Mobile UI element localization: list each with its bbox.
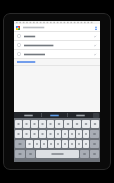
button[interactable] <box>39 130 46 138</box>
button[interactable] <box>31 120 38 128</box>
button[interactable]: Emoji <box>26 150 35 158</box>
button[interactable] <box>14 59 100 65</box>
button[interactable] <box>68 114 93 117</box>
button[interactable] <box>31 130 38 138</box>
button[interactable] <box>23 120 30 128</box>
other: Insert suggestion <box>94 35 97 38</box>
button[interactable] <box>15 130 22 138</box>
button[interactable] <box>42 114 67 117</box>
button[interactable] <box>15 120 22 128</box>
button[interactable]: Insert suggestion <box>14 41 100 49</box>
other: Insert suggestion <box>94 53 97 56</box>
button[interactable] <box>91 120 99 128</box>
button[interactable] <box>34 140 40 148</box>
button[interactable] <box>62 140 68 148</box>
button[interactable]: Insert suggestion <box>14 32 100 40</box>
other: Insert suggestion <box>94 44 97 47</box>
button[interactable] <box>55 130 61 138</box>
button[interactable]: Symbols <box>15 150 25 158</box>
button[interactable] <box>39 120 46 128</box>
button[interactable] <box>82 120 90 128</box>
button[interactable] <box>55 120 63 128</box>
button[interactable] <box>55 140 61 148</box>
button[interactable] <box>62 130 68 138</box>
button[interactable]: Enter <box>90 130 99 138</box>
button[interactable]: Hide keyboard <box>90 150 99 158</box>
button[interactable] <box>47 120 54 128</box>
button[interactable] <box>16 114 41 117</box>
button[interactable]: Backspace <box>90 140 99 148</box>
button[interactable] <box>41 140 47 148</box>
button[interactable] <box>26 140 33 148</box>
button[interactable] <box>69 140 75 148</box>
other: Google <box>16 26 20 30</box>
button[interactable] <box>76 140 82 148</box>
button[interactable]: Insert suggestion <box>14 50 100 58</box>
button[interactable] <box>64 120 72 128</box>
button[interactable] <box>76 130 82 138</box>
button[interactable]: Shift <box>15 140 25 148</box>
button[interactable] <box>83 130 89 138</box>
button[interactable]: Settings <box>80 150 89 158</box>
button[interactable] <box>48 140 54 148</box>
other: Voice search <box>94 26 98 30</box>
button[interactable] <box>23 130 30 138</box>
button[interactable] <box>83 140 89 148</box>
button[interactable] <box>47 130 54 138</box>
button[interactable] <box>73 120 81 128</box>
button[interactable] <box>69 130 75 138</box>
button[interactable]: Space <box>36 150 79 158</box>
button[interactable]: Google <box>14 24 100 31</box>
